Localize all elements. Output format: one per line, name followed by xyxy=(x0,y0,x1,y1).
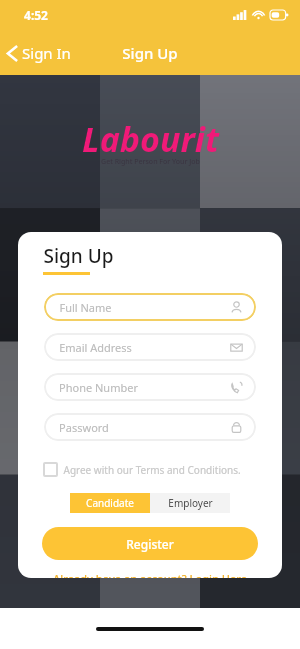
staticText: Register xyxy=(126,536,174,552)
staticText: Full Name xyxy=(59,300,112,315)
button[interactable]: Agree with our Terms and Conditions. xyxy=(41,460,243,479)
button[interactable]: Full Name xyxy=(44,293,256,321)
button[interactable]: Password xyxy=(44,413,256,441)
button[interactable]: Phone Number xyxy=(44,373,256,401)
staticText: Sign In xyxy=(18,43,71,63)
staticText: Labourit xyxy=(82,116,219,162)
button[interactable]: Back xyxy=(0,37,81,69)
staticText: 4:52 xyxy=(24,7,48,23)
button[interactable]: Email Address xyxy=(44,333,256,361)
staticText: Email Address xyxy=(59,340,132,355)
staticText: Password xyxy=(59,420,109,435)
staticText: Sign Up xyxy=(43,243,114,269)
staticText: Get Right Person For Your Job xyxy=(101,157,200,167)
staticText: Already have an account? Login Here xyxy=(53,571,247,578)
button[interactable]: Candidate xyxy=(70,493,150,513)
staticText: Agree with our Terms and Conditions. xyxy=(58,463,241,477)
staticText: Employer xyxy=(168,496,213,510)
button[interactable]: Already have an account? Login Here xyxy=(18,571,282,578)
staticText: Candidate xyxy=(86,496,134,510)
staticText: Sign Up xyxy=(122,43,178,63)
other: Back xyxy=(7,45,18,62)
button[interactable]: Employer xyxy=(150,493,230,513)
staticText: Phone Number xyxy=(59,380,138,395)
button[interactable]: Register xyxy=(42,527,258,560)
